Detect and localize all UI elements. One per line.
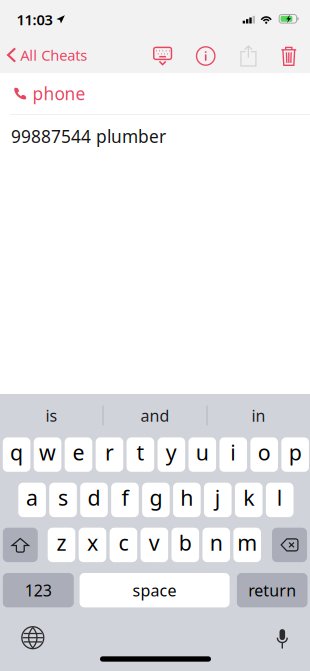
staticText: 99887544 plumber: [11, 125, 166, 148]
button[interactable]: q: [3, 437, 30, 472]
button[interactable]: l: [266, 483, 293, 517]
button[interactable]: e: [65, 437, 92, 472]
staticText: y: [166, 438, 177, 466]
staticText: l: [277, 483, 283, 511]
button[interactable]: x: [79, 528, 106, 562]
button[interactable]: v: [141, 528, 168, 562]
staticText: All Cheats: [20, 45, 87, 65]
button[interactable]: Hide keyboard: [146, 38, 180, 74]
staticText: in: [251, 405, 265, 426]
staticText: z: [56, 528, 66, 556]
staticText: a: [26, 483, 38, 511]
button[interactable]: j: [204, 483, 232, 517]
button[interactable]: s: [49, 483, 77, 517]
button[interactable]: o: [250, 437, 278, 472]
staticText: t: [136, 438, 144, 466]
button[interactable]: a: [18, 483, 46, 517]
button[interactable]: f: [111, 483, 139, 517]
staticText: f: [121, 483, 128, 511]
staticText: b: [179, 528, 192, 556]
button[interactable]: z: [48, 528, 75, 562]
staticText: q: [10, 438, 23, 466]
staticText: c: [118, 528, 128, 556]
button[interactable]: Delete: [272, 528, 307, 562]
staticText: space: [133, 580, 177, 601]
button[interactable]: Shift: [3, 528, 38, 562]
staticText: k: [243, 483, 254, 511]
staticText: e: [72, 438, 84, 466]
button[interactable]: Dictate: [262, 621, 302, 657]
button[interactable]: is: [0, 394, 103, 437]
staticText: x: [87, 528, 98, 556]
button[interactable]: h: [173, 483, 201, 517]
staticText: w: [39, 438, 56, 466]
button[interactable]: and: [103, 394, 206, 437]
staticText: r: [105, 438, 114, 466]
button[interactable]: p: [281, 437, 309, 472]
staticText: n: [210, 528, 223, 556]
button[interactable]: space: [80, 573, 230, 607]
staticText: s: [58, 483, 68, 511]
button[interactable]: d: [80, 483, 108, 517]
button[interactable]: y: [158, 437, 185, 472]
staticText: 11:03: [17, 10, 53, 29]
button[interactable]: g: [142, 483, 170, 517]
staticText: h: [180, 483, 193, 511]
button[interactable]: k: [235, 483, 262, 517]
button[interactable]: b: [171, 528, 199, 562]
staticText: is: [45, 405, 57, 426]
button[interactable]: All Cheats: [0, 37, 95, 73]
button[interactable]: return: [237, 573, 307, 607]
staticText: m: [237, 528, 257, 556]
staticText: and: [140, 405, 169, 426]
staticText: p: [289, 438, 302, 466]
staticText: u: [196, 438, 209, 466]
staticText: return: [248, 580, 296, 601]
staticText: phone: [32, 82, 85, 105]
button[interactable]: t: [127, 437, 154, 472]
button[interactable]: w: [34, 437, 61, 472]
button[interactable]: m: [233, 528, 261, 562]
staticText: j: [215, 483, 221, 511]
button[interactable]: in: [207, 394, 310, 437]
button[interactable]: Share: [231, 38, 265, 74]
button[interactable]: i: [219, 437, 247, 472]
staticText: v: [149, 528, 160, 556]
button[interactable]: c: [110, 528, 137, 562]
staticText: o: [258, 438, 271, 466]
staticText: g: [149, 483, 162, 511]
button[interactable]: Info: [189, 38, 223, 74]
button[interactable]: 123: [3, 573, 74, 607]
staticText: i: [230, 438, 236, 466]
button[interactable]: u: [188, 437, 216, 472]
button[interactable]: r: [96, 437, 123, 472]
button[interactable]: Next keyboard: [13, 620, 53, 656]
button[interactable]: Delete: [272, 38, 306, 74]
button[interactable]: n: [202, 528, 230, 562]
staticText: 123: [25, 580, 52, 601]
staticText: d: [87, 483, 100, 511]
